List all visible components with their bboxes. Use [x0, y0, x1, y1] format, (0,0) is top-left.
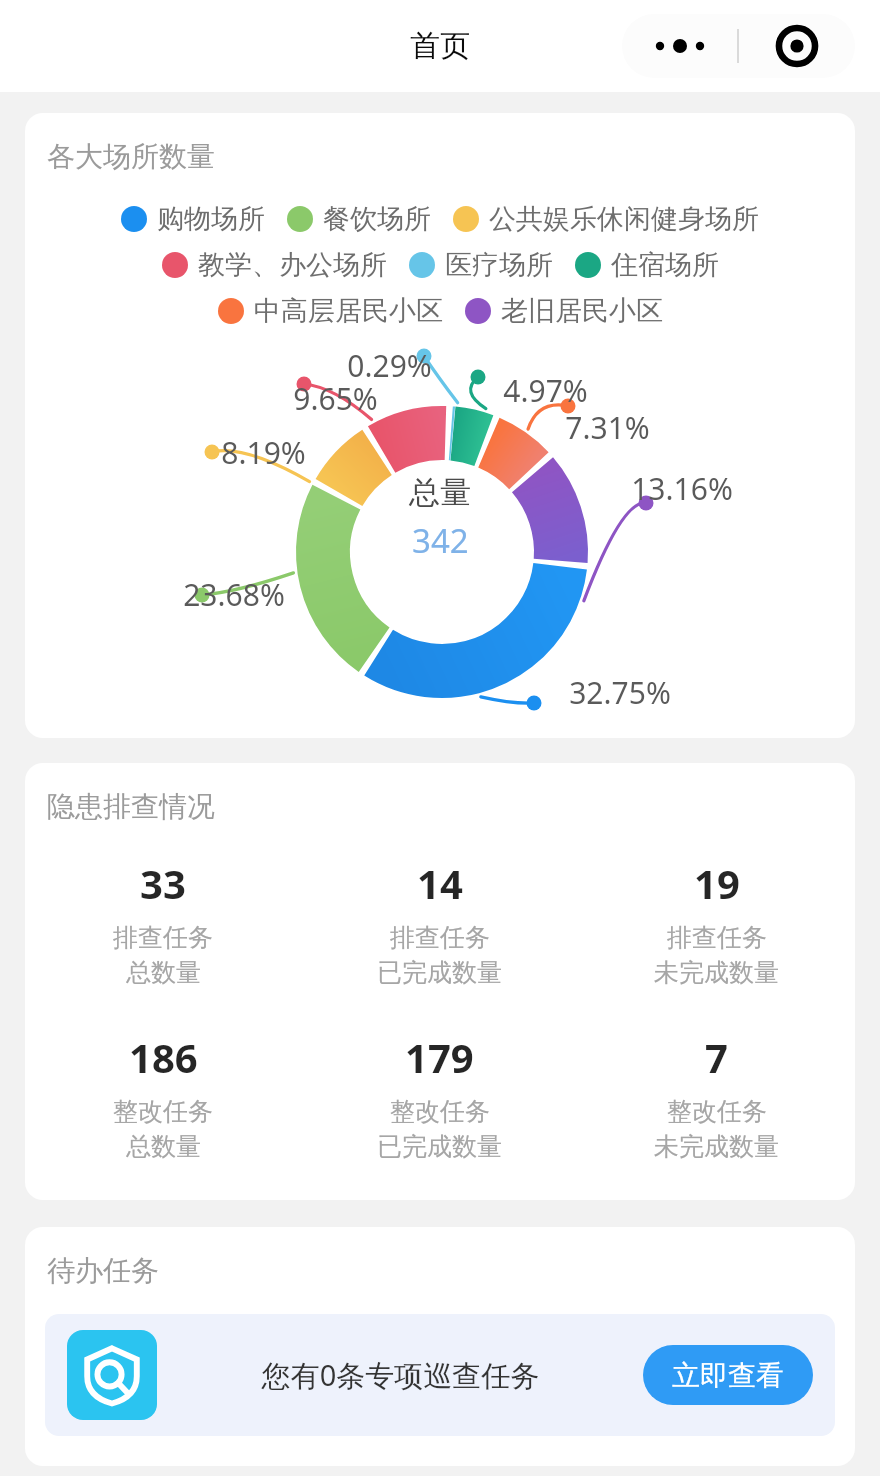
- staticText: 各大场所数量: [47, 139, 215, 174]
- staticText: 总量: [409, 473, 471, 512]
- staticText: 住宿场所: [611, 248, 719, 282]
- staticText: 首页: [410, 27, 470, 65]
- staticText: 整改任务: [390, 1096, 490, 1127]
- staticText: 19: [694, 856, 740, 910]
- staticText: 33: [140, 856, 186, 910]
- staticText: 7.31%: [565, 407, 650, 448]
- staticText: 老旧居民小区: [501, 294, 663, 328]
- staticText: 总数量: [126, 957, 201, 988]
- staticText: 立即查看: [672, 1358, 784, 1393]
- staticText: 已完成数量: [377, 1131, 502, 1162]
- staticText: 未完成数量: [654, 957, 779, 988]
- staticText: 排查任务: [390, 922, 490, 953]
- staticText: 9.65%: [293, 378, 378, 419]
- staticText: 23.68%: [183, 574, 285, 615]
- staticText: 8.19%: [221, 432, 306, 473]
- staticText: 中高层居民小区: [254, 294, 443, 328]
- button[interactable]: More: [622, 14, 737, 78]
- staticText: 隐患排查情况: [47, 789, 215, 824]
- button[interactable]: 立即查看: [643, 1345, 813, 1405]
- staticText: 0.29%: [347, 345, 432, 386]
- button[interactable]: 您有0条专项巡查任务: [45, 1314, 835, 1436]
- staticText: 未完成数量: [654, 1131, 779, 1162]
- staticText: 排查任务: [667, 922, 767, 953]
- staticText: 总数量: [126, 1131, 201, 1162]
- staticText: 13.16%: [631, 468, 733, 509]
- staticText: 整改任务: [113, 1096, 213, 1127]
- staticText: 餐饮场所: [323, 202, 431, 236]
- staticText: 排查任务: [113, 922, 213, 953]
- staticText: 医疗场所: [445, 248, 553, 282]
- staticText: 教学、办公场所: [198, 248, 387, 282]
- staticText: 整改任务: [667, 1096, 767, 1127]
- staticText: 待办任务: [47, 1253, 159, 1288]
- button[interactable]: Close: [739, 14, 855, 78]
- staticText: 购物场所: [157, 202, 265, 236]
- staticText: 4.97%: [503, 370, 588, 411]
- staticText: 14: [417, 856, 463, 910]
- staticText: 您有0条专项巡查任务: [158, 1355, 643, 1395]
- staticText: 186: [129, 1030, 198, 1084]
- staticText: 公共娱乐休闲健身场所: [489, 202, 759, 236]
- staticText: 7: [705, 1030, 728, 1084]
- staticText: 179: [405, 1030, 474, 1084]
- staticText: 已完成数量: [377, 957, 502, 988]
- staticText: 32.75%: [569, 672, 671, 713]
- staticText: 342: [412, 518, 469, 563]
